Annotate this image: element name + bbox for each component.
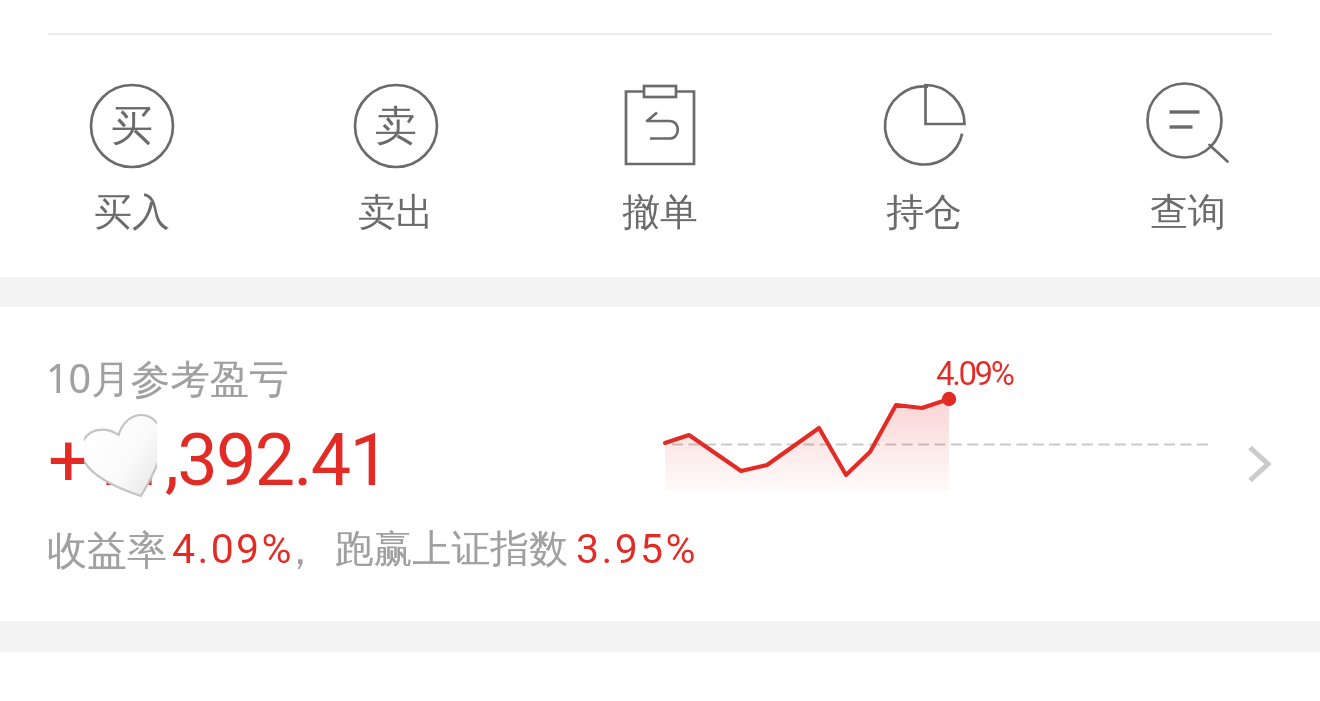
staticText: 3.95% xyxy=(576,525,698,573)
staticText: 卖 xyxy=(375,100,417,153)
staticText: 查询 xyxy=(1150,188,1226,236)
button[interactable]: 买 xyxy=(0,39,264,245)
button[interactable]: 10月参考盈亏 xyxy=(0,307,1320,620)
staticText: 卖出 xyxy=(358,188,434,236)
staticText: 收益率 xyxy=(47,525,167,575)
staticText: 10月参考盈亏 xyxy=(46,351,289,405)
button[interactable]: 持仓 xyxy=(792,39,1056,245)
button[interactable]: 查询 xyxy=(1056,39,1320,245)
staticText: 4.09% xyxy=(172,525,294,573)
button[interactable]: 撤单 xyxy=(528,39,792,245)
staticText: 持仓 xyxy=(886,188,962,236)
other: Open monthly profit detail xyxy=(1246,446,1272,482)
button[interactable]: 卖 xyxy=(264,39,528,245)
staticText: 买 xyxy=(111,100,153,153)
staticText: 跑赢上证指数 xyxy=(335,525,568,574)
staticText: 撤单 xyxy=(622,188,698,236)
staticText: 买入 xyxy=(94,188,170,236)
staticText: 4.09% xyxy=(936,354,1013,393)
staticText: ， xyxy=(280,525,320,575)
staticText: +11,392.41 xyxy=(48,418,389,502)
